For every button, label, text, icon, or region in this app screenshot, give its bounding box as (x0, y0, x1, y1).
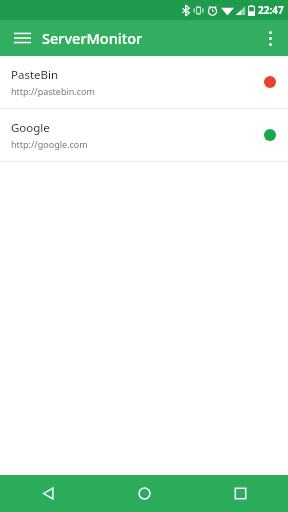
button[interactable]: Recent apps (192, 475, 288, 512)
button[interactable]: Back (0, 475, 96, 512)
staticText: http://google.com (11, 138, 88, 150)
button[interactable]: PasteBin (0, 56, 288, 108)
staticText: ServerMonitor (42, 28, 143, 48)
button[interactable]: Home (96, 475, 192, 512)
button[interactable]: Open navigation drawer (6, 22, 38, 54)
staticText: http://pastebin.com (11, 85, 95, 97)
button[interactable]: More options (255, 23, 285, 53)
button[interactable]: Google (0, 109, 288, 161)
staticText: 22:47 (258, 3, 284, 17)
staticText: PasteBin (11, 67, 59, 83)
staticText: Google (11, 120, 50, 136)
